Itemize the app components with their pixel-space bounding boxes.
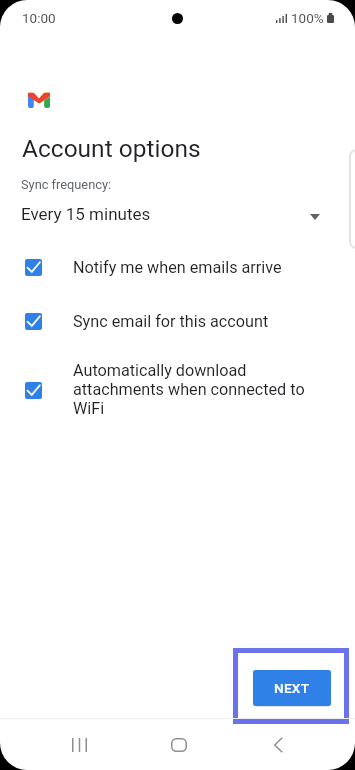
staticText: NEXT (274, 680, 310, 696)
staticText: Account options (22, 134, 201, 163)
button[interactable]: NEXT (253, 670, 331, 706)
button[interactable]: Every 15 minutes (0, 198, 355, 232)
button[interactable]: Back (254, 721, 302, 769)
button[interactable]: Recent apps (55, 721, 103, 769)
staticText: Automatically download attachments when … (73, 361, 313, 418)
staticText: Sync frequency: (21, 177, 112, 192)
staticText: Every 15 minutes (21, 204, 151, 224)
button[interactable]: Automatically download attachments when … (0, 353, 355, 429)
button[interactable]: Home (155, 721, 203, 769)
staticText: 10:00 (22, 10, 56, 26)
staticText: 100% (291, 10, 324, 26)
button[interactable]: Notify me when emails arrive (0, 250, 355, 288)
staticText: Sync email for this account (73, 312, 269, 331)
button[interactable]: Sync email for this account (0, 304, 355, 342)
staticText: Notify me when emails arrive (73, 258, 282, 277)
